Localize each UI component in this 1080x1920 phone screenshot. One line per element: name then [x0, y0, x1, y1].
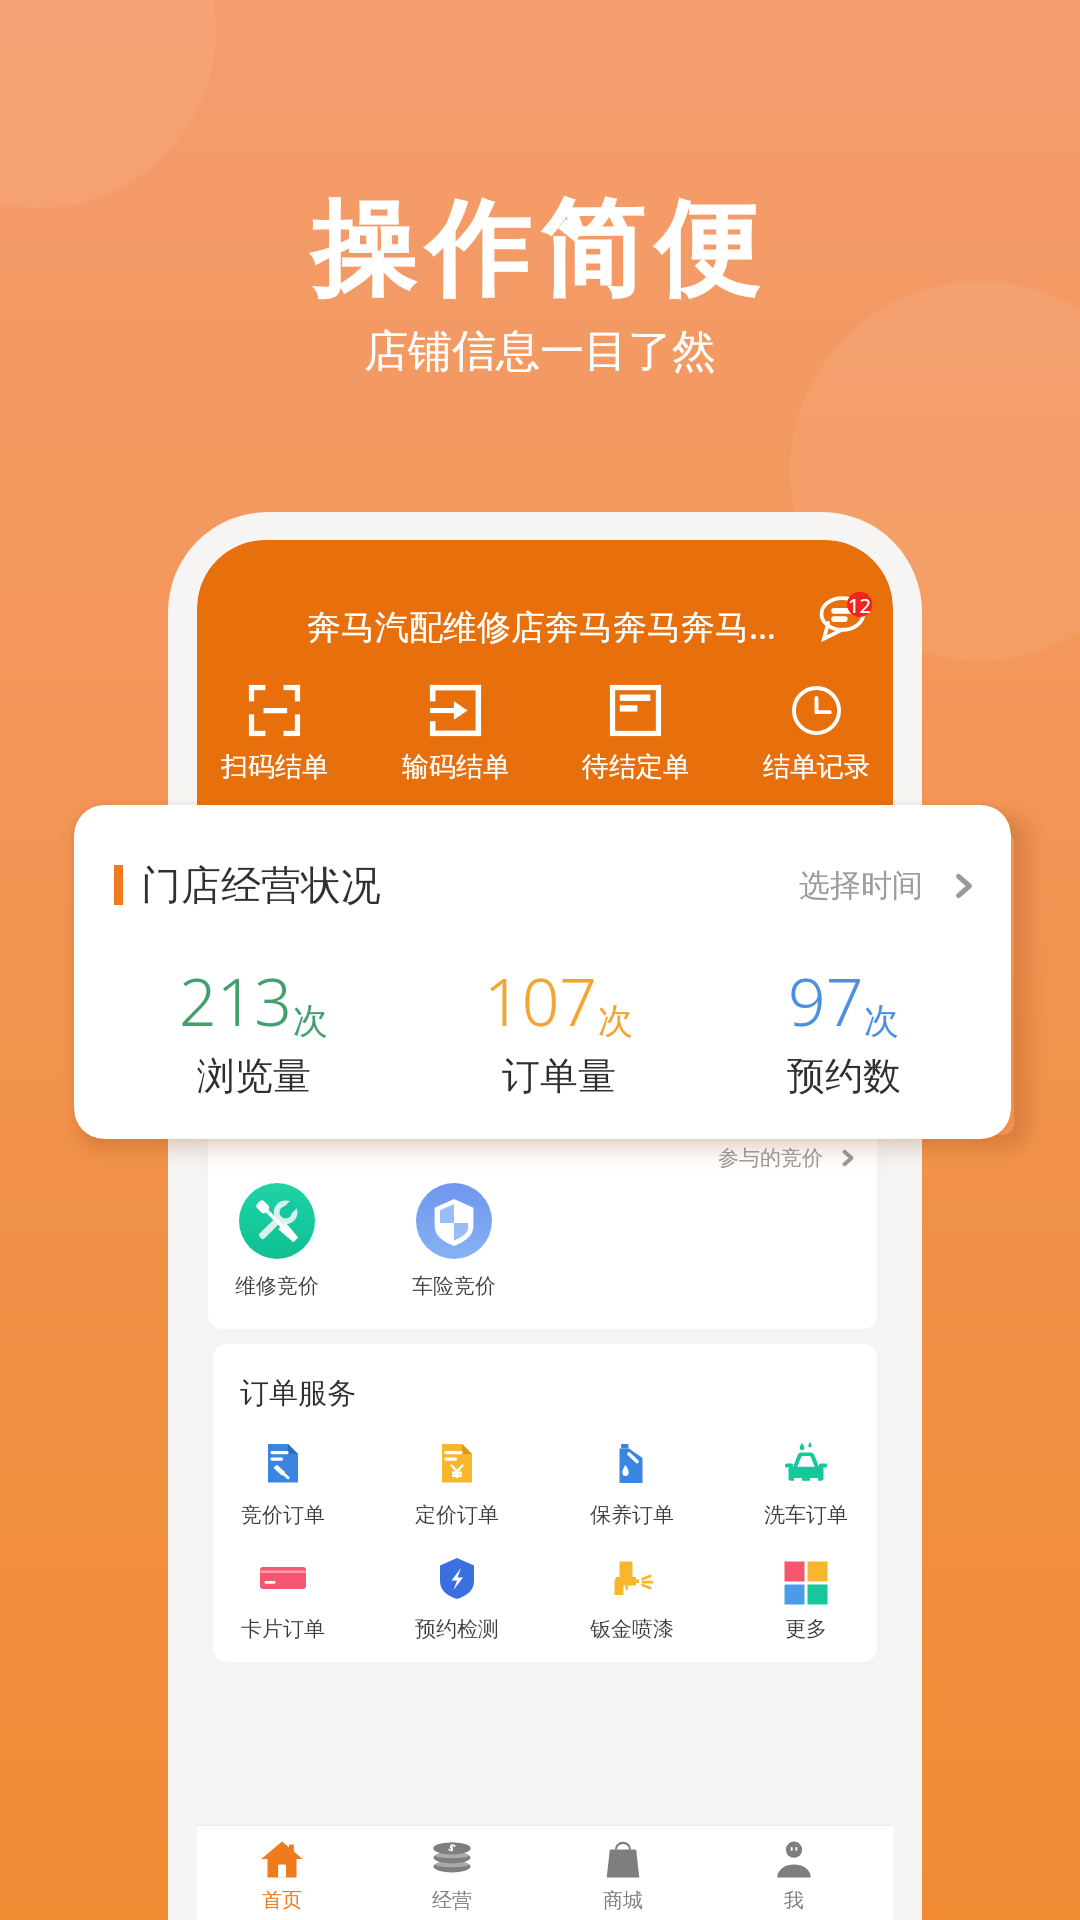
staticText: 钣金喷漆 — [590, 1616, 674, 1642]
staticText: 次 — [598, 999, 633, 1043]
button[interactable]: 97 — [723, 955, 964, 1100]
button[interactable]: 定价订单 — [414, 1439, 500, 1528]
staticText: 卡片订单 — [241, 1616, 325, 1642]
staticText: 订单量 — [502, 1052, 616, 1100]
button[interactable]: 输码结单 — [402, 683, 508, 784]
button[interactable]: 选择时间 — [799, 866, 981, 905]
staticText: 首页 — [262, 1888, 302, 1913]
staticText: 车险竞价 — [412, 1273, 496, 1299]
staticText: 12 — [847, 592, 872, 619]
button[interactable]: 结单记录 — [763, 683, 869, 784]
staticText: 预约检测 — [415, 1616, 499, 1642]
staticText: 经营 — [432, 1888, 472, 1913]
staticText: 更多 — [785, 1616, 827, 1642]
staticText: 次 — [293, 999, 328, 1043]
staticText: 213 — [179, 955, 293, 1045]
button[interactable]: Messages — [815, 591, 887, 663]
button[interactable]: 商城 — [537, 1826, 708, 1920]
staticText: 参与的竞价 — [718, 1145, 823, 1171]
staticText: 操作简便 — [0, 185, 1080, 316]
staticText: 维修竞价 — [235, 1273, 319, 1299]
button[interactable]: 扫码结单 — [221, 683, 327, 784]
button[interactable]: 竞价订单 — [240, 1439, 326, 1528]
button[interactable]: 车险竞价 — [399, 1183, 509, 1299]
staticText: 107 — [484, 955, 598, 1045]
button[interactable]: 更多 — [763, 1553, 849, 1642]
staticText: 门店经营状况 — [141, 860, 381, 910]
staticText: 预约数 — [787, 1052, 901, 1100]
staticText: 待结定单 — [582, 750, 688, 784]
staticText: 洗车订单 — [764, 1502, 848, 1528]
staticText: 扫码结单 — [221, 750, 327, 784]
button[interactable]: 预约检测 — [414, 1553, 500, 1642]
button[interactable]: 我 — [708, 1826, 879, 1920]
staticText: 商城 — [603, 1888, 643, 1913]
staticText: 店铺信息一目了然 — [0, 324, 1080, 379]
staticText: 结单记录 — [763, 750, 869, 784]
staticText: 竞价订单 — [241, 1502, 325, 1528]
staticText: 次 — [864, 999, 899, 1043]
button[interactable]: 经营 — [367, 1826, 537, 1920]
button[interactable]: 213 — [133, 955, 374, 1100]
staticText: 我 — [784, 1888, 804, 1913]
button[interactable]: 首页 — [197, 1826, 367, 1920]
button[interactable]: 卡片订单 — [240, 1553, 326, 1642]
staticText: 订单服务 — [240, 1375, 356, 1412]
staticText: 定价订单 — [415, 1502, 499, 1528]
button[interactable]: 保养订单 — [589, 1439, 675, 1528]
staticText: 97 — [788, 955, 864, 1045]
staticText: 选择时间 — [799, 866, 923, 905]
staticText: 保养订单 — [590, 1502, 674, 1528]
button[interactable]: 待结定单 — [582, 683, 688, 784]
button[interactable]: 107 — [438, 955, 679, 1100]
staticText: 输码结单 — [402, 750, 508, 784]
staticText: 奔马汽配维修店奔马奔马奔马… — [307, 603, 776, 649]
button[interactable]: 维修竞价 — [222, 1183, 332, 1299]
button[interactable]: 参与的竞价 — [718, 1145, 859, 1171]
button[interactable]: 钣金喷漆 — [589, 1553, 675, 1642]
staticText: 浏览量 — [197, 1052, 311, 1100]
button[interactable]: 洗车订单 — [763, 1439, 849, 1528]
